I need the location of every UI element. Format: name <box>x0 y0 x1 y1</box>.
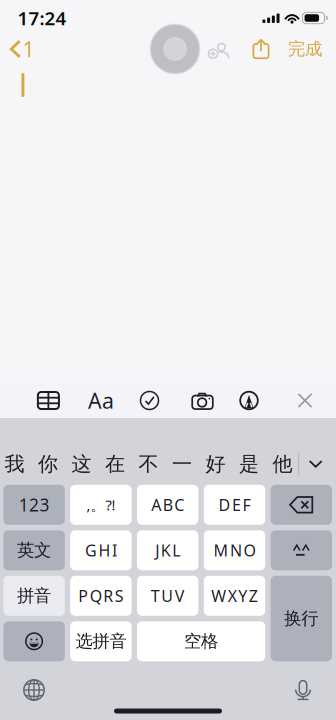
button[interactable]: Table <box>26 383 70 418</box>
button[interactable]: Camera <box>180 383 224 418</box>
staticText: PQRS <box>78 585 124 606</box>
staticText: 你 <box>38 452 58 476</box>
button[interactable]: 我 <box>0 438 31 490</box>
button[interactable]: 你 <box>32 438 65 490</box>
staticText: 选拼音 <box>75 631 126 652</box>
button[interactable]: GHI <box>70 530 132 570</box>
staticText: DEF <box>218 494 250 515</box>
button[interactable]: Emoji <box>3 621 65 661</box>
button[interactable]: 拼音 <box>3 576 65 616</box>
staticText: 完成 <box>288 38 322 60</box>
button[interactable]: DEF <box>204 485 265 525</box>
button[interactable]: 空格 <box>137 621 265 661</box>
staticText: WXYZ <box>211 585 258 606</box>
staticText: JKL <box>155 540 180 561</box>
button[interactable]: ABC <box>137 485 198 525</box>
button[interactable]: 换行 <box>271 576 332 661</box>
button[interactable]: Text format <box>79 383 123 418</box>
button[interactable]: Checklist <box>127 383 171 418</box>
staticText: ABC <box>151 494 184 515</box>
button[interactable]: 在 <box>99 438 132 490</box>
button[interactable]: 123 <box>3 485 65 525</box>
button[interactable]: JKL <box>137 530 198 570</box>
button[interactable]: 选拼音 <box>70 621 132 661</box>
button[interactable]: Add People <box>201 34 237 64</box>
button[interactable]: Close <box>283 383 327 418</box>
staticText: 这 <box>72 452 92 476</box>
button[interactable]: Dictation <box>281 670 325 710</box>
button[interactable]: MNO <box>204 530 265 570</box>
staticText: 空格 <box>184 631 218 652</box>
staticText: 在 <box>105 452 125 476</box>
button[interactable]: Kaomoji <box>271 530 332 570</box>
button[interactable]: 英文 <box>3 530 65 570</box>
staticText: 拼音 <box>17 585 51 606</box>
staticText: 换行 <box>284 608 318 629</box>
staticText: 我 <box>5 452 25 476</box>
staticText: 123 <box>19 493 49 516</box>
button[interactable]: Next keyboard <box>12 670 56 710</box>
button[interactable]: Share <box>244 31 278 67</box>
staticText: Aa <box>88 386 114 415</box>
button[interactable]: 这 <box>65 438 98 490</box>
staticText: 不 <box>139 452 159 476</box>
staticText: 他 <box>273 452 293 476</box>
button[interactable]: 他 <box>266 438 299 490</box>
button[interactable]: 1 <box>0 29 44 69</box>
staticText: 好 <box>206 452 226 476</box>
button[interactable]: 好 <box>199 438 232 490</box>
button[interactable]: 不 <box>132 438 165 490</box>
button[interactable]: More candidates <box>298 438 334 490</box>
button[interactable]: 一 <box>166 438 199 490</box>
staticText: ,。?! <box>86 495 115 515</box>
staticText: 一 <box>172 452 192 476</box>
staticText: GHI <box>85 540 117 561</box>
staticText: MNO <box>213 540 255 561</box>
button[interactable]: ,。?! <box>70 485 132 525</box>
button[interactable]: 完成 <box>279 29 331 69</box>
button[interactable]: Markup <box>227 383 271 418</box>
staticText: 17:24 <box>17 6 66 30</box>
staticText: 英文 <box>17 540 51 561</box>
staticText: TUV <box>151 585 185 606</box>
button[interactable]: 是 <box>233 438 266 490</box>
button[interactable]: PQRS <box>70 576 132 616</box>
button[interactable]: WXYZ <box>204 576 265 616</box>
button[interactable]: TUV <box>137 576 198 616</box>
button[interactable]: Delete <box>271 485 332 525</box>
staticText: 是 <box>239 452 259 476</box>
staticText: 1 <box>22 35 34 63</box>
